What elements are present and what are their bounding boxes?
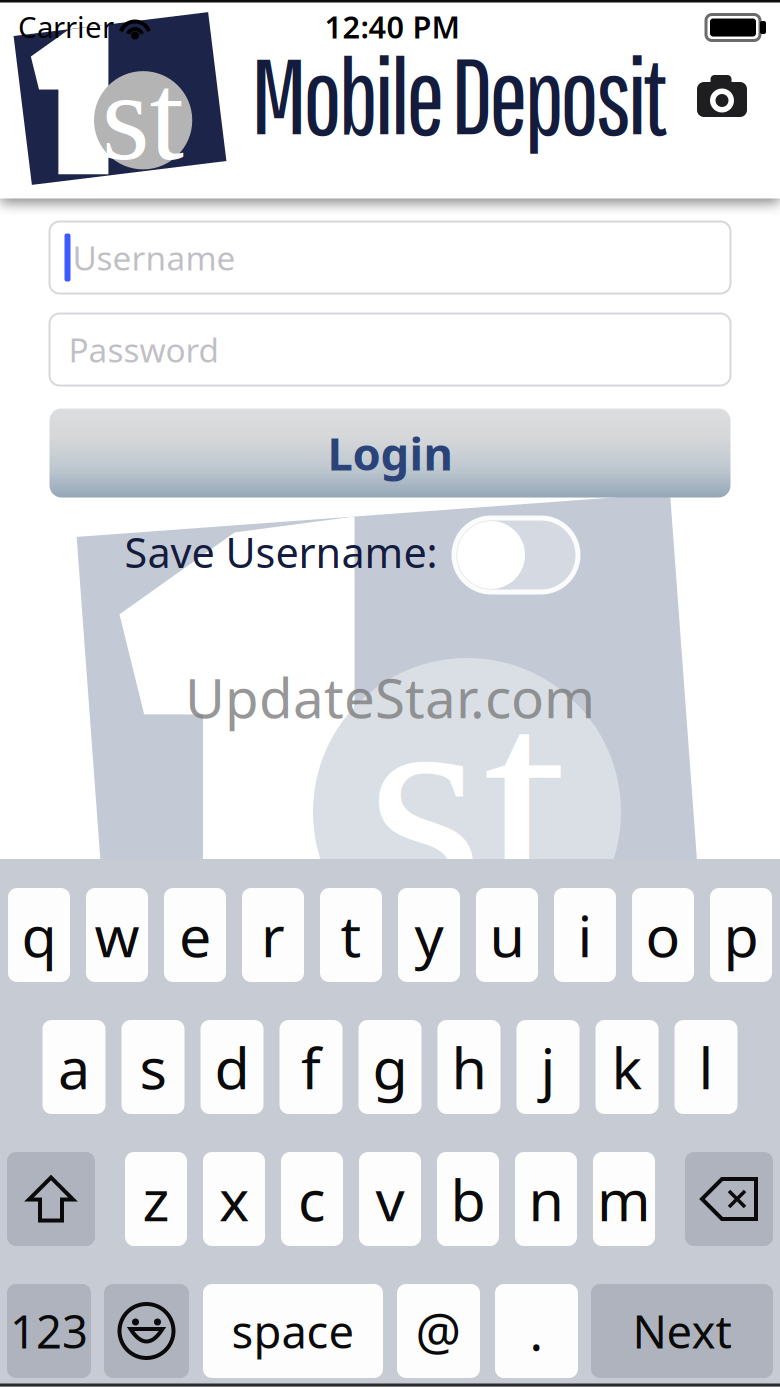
button[interactable]: x <box>203 1152 265 1246</box>
button[interactable]: y <box>398 888 460 982</box>
staticText: st <box>101 49 183 186</box>
button[interactable]: u <box>476 888 538 982</box>
staticText: 12:40 PM <box>324 6 459 47</box>
button[interactable]: 123 <box>7 1284 91 1378</box>
button[interactable]: m <box>593 1152 655 1246</box>
staticText: UpdateStar.com <box>185 661 595 733</box>
button[interactable]: i <box>554 888 616 982</box>
staticText: v <box>375 1161 404 1237</box>
button[interactable]: Delete <box>685 1152 773 1246</box>
button[interactable]: z <box>125 1152 187 1246</box>
staticText: f <box>301 1029 321 1105</box>
button[interactable]: n <box>515 1152 577 1246</box>
staticText: Mobile Deposit <box>250 34 667 155</box>
button[interactable]: q <box>8 888 70 982</box>
staticText: h <box>451 1029 486 1105</box>
staticText: g <box>372 1029 407 1105</box>
staticText: d <box>214 1029 249 1105</box>
staticText: space <box>231 1301 354 1361</box>
staticText: Username <box>72 235 235 280</box>
button[interactable]: space <box>203 1284 383 1378</box>
staticText: r <box>261 897 285 973</box>
staticText: p <box>723 897 758 973</box>
staticText: b <box>450 1161 485 1237</box>
staticText: st <box>366 635 567 969</box>
button[interactable]: v <box>359 1152 421 1246</box>
staticText: y <box>414 897 443 973</box>
button[interactable]: w <box>86 888 148 982</box>
button[interactable]: t <box>320 888 382 982</box>
button[interactable]: f <box>279 1020 342 1114</box>
button[interactable]: . <box>495 1284 578 1378</box>
button[interactable]: o <box>632 888 694 982</box>
button[interactable]: a <box>42 1020 105 1114</box>
staticText: t <box>340 897 361 973</box>
button[interactable]: Shift <box>7 1152 95 1246</box>
staticText: x <box>219 1161 249 1237</box>
button[interactable]: c <box>281 1152 343 1246</box>
button[interactable]: k <box>595 1020 658 1114</box>
button[interactable]: Next <box>591 1284 773 1378</box>
staticText: Password <box>68 327 219 372</box>
staticText: w <box>94 897 139 973</box>
staticText: s <box>139 1029 166 1105</box>
staticText: Login <box>327 423 452 483</box>
staticText: q <box>21 897 56 973</box>
button[interactable]: l <box>674 1020 737 1114</box>
button[interactable]: Save Username <box>454 518 578 592</box>
button[interactable]: h <box>437 1020 500 1114</box>
button[interactable]: Emoji <box>104 1284 189 1378</box>
button[interactable]: e <box>164 888 226 982</box>
staticText: i <box>577 897 592 973</box>
staticText: n <box>528 1161 563 1237</box>
button[interactable]: p <box>710 888 772 982</box>
staticText: e <box>179 897 211 973</box>
staticText: o <box>645 897 680 973</box>
button[interactable]: j <box>516 1020 579 1114</box>
staticText: m <box>597 1161 651 1237</box>
button[interactable]: r <box>242 888 304 982</box>
staticText: . <box>529 1297 543 1365</box>
staticText: 123 <box>10 1301 88 1361</box>
staticText: Save Username: <box>124 525 437 579</box>
staticText: l <box>698 1029 713 1105</box>
staticText: k <box>611 1029 642 1105</box>
button[interactable]: g <box>358 1020 421 1114</box>
staticText: c <box>298 1161 326 1237</box>
button[interactable]: d <box>200 1020 263 1114</box>
staticText: j <box>540 1029 555 1105</box>
staticText: z <box>142 1161 169 1237</box>
staticText: u <box>489 897 524 973</box>
button[interactable]: s <box>121 1020 184 1114</box>
button[interactable]: b <box>437 1152 499 1246</box>
staticText: a <box>58 1029 90 1105</box>
staticText: Next <box>632 1301 731 1361</box>
button[interactable]: Camera <box>692 67 752 125</box>
staticText: @ <box>415 1297 461 1365</box>
button[interactable]: @ <box>397 1284 480 1378</box>
button[interactable]: Login <box>49 408 730 497</box>
staticText: Carrier <box>18 7 114 46</box>
